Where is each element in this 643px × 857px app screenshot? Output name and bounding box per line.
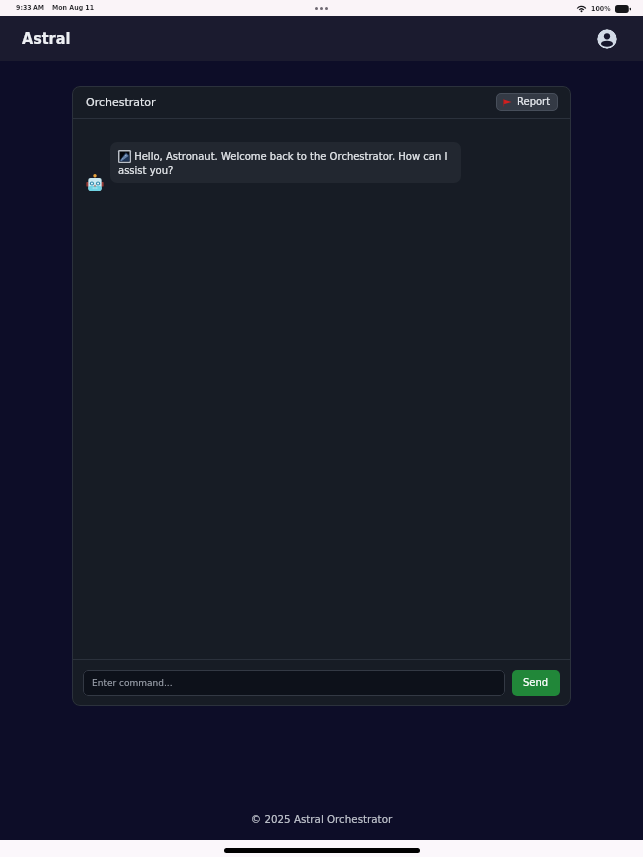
button[interactable]: Send xyxy=(512,670,560,696)
button[interactable]: Report xyxy=(496,93,558,111)
staticText: 100% xyxy=(591,5,611,13)
staticText: © 2025 Astral Orchestrator xyxy=(0,813,643,825)
staticText: Orchestrator xyxy=(86,96,156,109)
staticText: Astral xyxy=(22,29,71,48)
staticText: Mon Aug 11 xyxy=(52,4,95,12)
staticText: 🌌 Hello, Astronaut. Welcome back to the … xyxy=(118,150,452,177)
staticText: Send xyxy=(523,677,549,689)
button[interactable]: Account xyxy=(597,29,617,49)
staticText: Report xyxy=(517,96,551,108)
button[interactable]: Enter command... xyxy=(83,670,505,696)
staticText: 9:33 AM xyxy=(16,4,45,12)
staticText: Enter command... xyxy=(92,678,173,688)
